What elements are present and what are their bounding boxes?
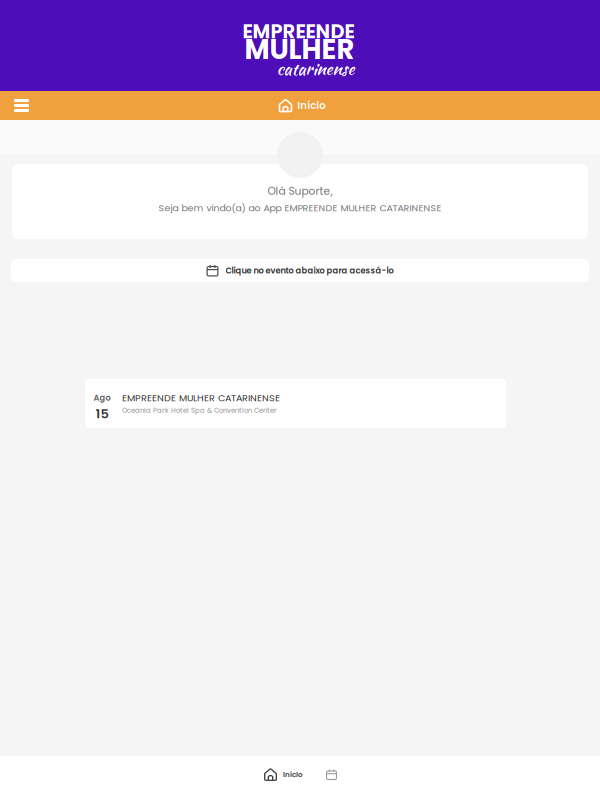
staticText: 15 xyxy=(95,405,108,423)
staticText: Olá Suporte, xyxy=(267,183,332,198)
staticText: EMPREENDE MULHER CATARINENSE xyxy=(122,391,280,404)
staticText: Seja bem vindo(a) ao App EMPREENDE MULHE… xyxy=(158,201,441,215)
staticText: MULHER xyxy=(244,30,354,69)
staticText: Ago xyxy=(93,392,110,404)
button[interactable]: Eventos xyxy=(318,756,345,800)
staticText: Início xyxy=(297,98,325,113)
button[interactable]: Clique no evento abaixo para acessá-lo xyxy=(0,259,600,282)
staticText: catarinense xyxy=(276,56,354,81)
button[interactable]: Menu xyxy=(0,91,43,120)
button[interactable]: Início xyxy=(256,756,311,800)
staticText: Início xyxy=(283,769,303,780)
staticText: EMPREENDE xyxy=(242,18,354,45)
staticText: Clique no evento abaixo para acessá-lo xyxy=(225,265,393,276)
staticText: Oceania Park Hotel Spa & Convention Cent… xyxy=(122,405,277,415)
button[interactable]: Ago xyxy=(0,379,600,428)
